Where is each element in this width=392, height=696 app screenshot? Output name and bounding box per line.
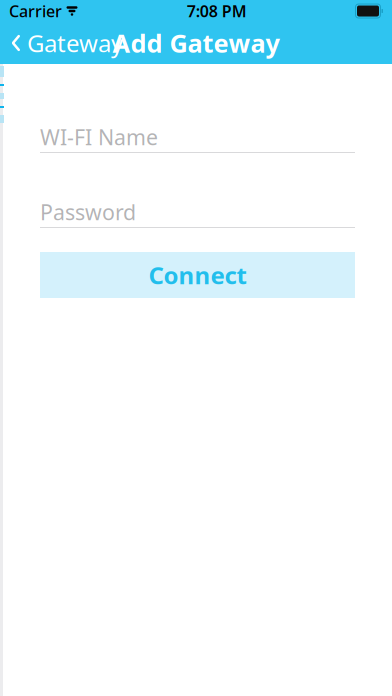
button[interactable]: WI-FI Name [40, 122, 355, 153]
staticText: Add Gateway [112, 26, 279, 60]
button[interactable]: Connect [40, 252, 355, 298]
staticText: Carrier [9, 0, 62, 22]
staticText: WI-FI Name [40, 123, 158, 151]
staticText: Password [40, 198, 136, 226]
staticText: Connect [148, 259, 246, 291]
button[interactable]: Gateway [0, 22, 133, 64]
staticText: 7:08 PM [187, 0, 247, 22]
staticText: Gateway [27, 27, 123, 59]
button[interactable]: Password [40, 197, 355, 228]
